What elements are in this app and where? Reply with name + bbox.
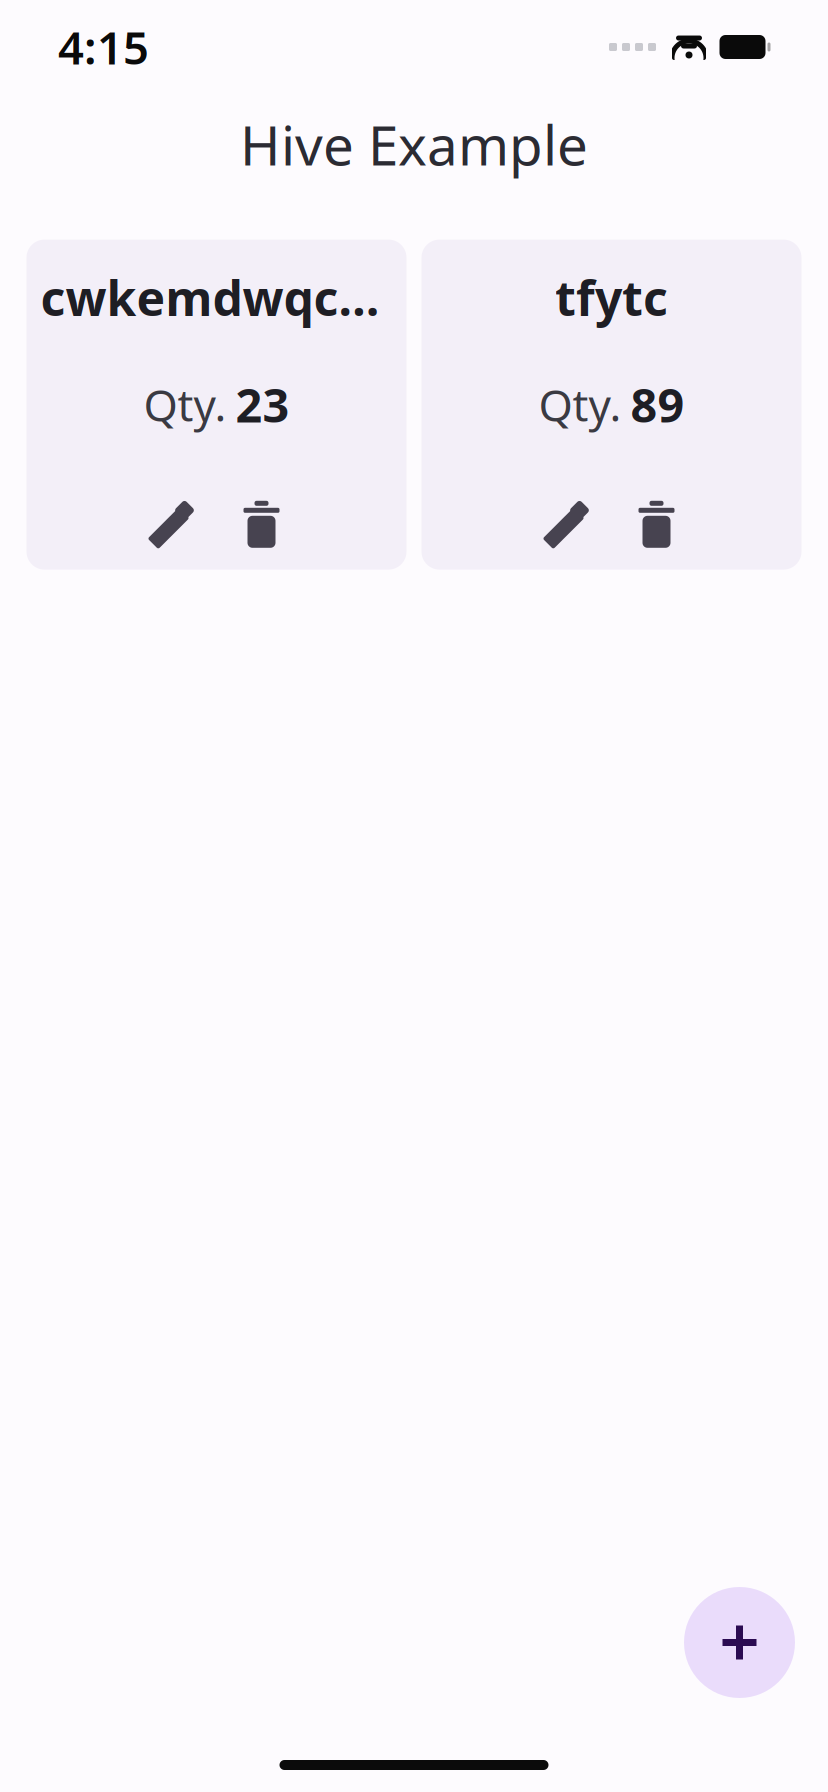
staticText: Qty. bbox=[143, 375, 226, 433]
staticText: 4:15 bbox=[58, 17, 149, 77]
button[interactable]: Add item bbox=[684, 1587, 795, 1698]
staticText: Hive Example bbox=[240, 108, 588, 181]
staticText: tfytc bbox=[555, 266, 668, 329]
button[interactable]: Edit cwkemdwqcw... bbox=[126, 493, 216, 555]
button[interactable]: Delete tfytc bbox=[611, 493, 701, 555]
button[interactable]: cwkemdwqcw... bbox=[26, 240, 406, 570]
button[interactable]: Edit tfytc bbox=[521, 493, 611, 555]
button[interactable]: Delete cwkemdwqcw... bbox=[216, 493, 306, 555]
staticText: 23 bbox=[235, 373, 289, 435]
staticText: Qty. bbox=[538, 375, 621, 433]
staticText: 89 bbox=[630, 373, 684, 435]
staticText: cwkemdwqcw... bbox=[40, 266, 392, 329]
button[interactable]: tfytc bbox=[421, 240, 801, 570]
